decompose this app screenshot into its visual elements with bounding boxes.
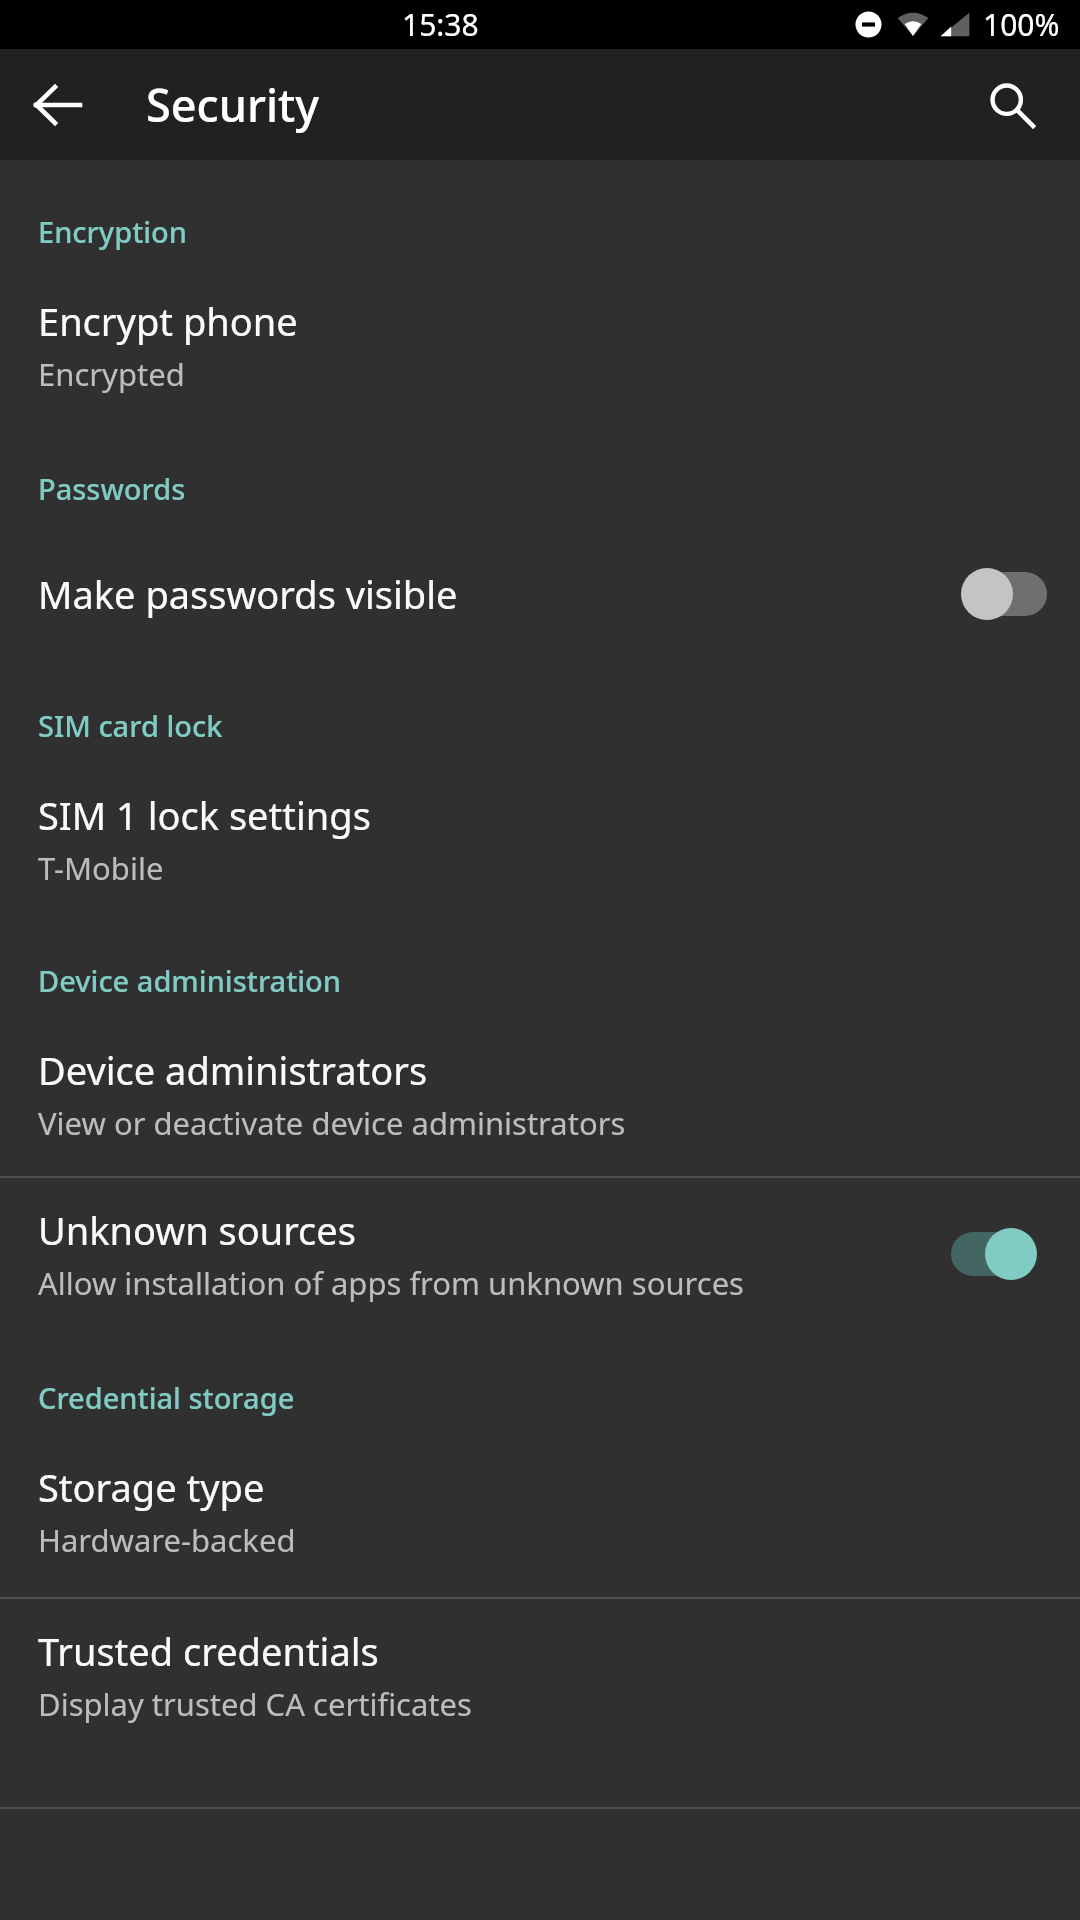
button[interactable]: Storage type xyxy=(0,1461,1080,1561)
button[interactable]: Trusted credentials xyxy=(0,1599,1080,1751)
button[interactable]: Switch on xyxy=(934,1206,1064,1302)
staticText: Passwords xyxy=(38,469,186,508)
button[interactable]: Device administrators xyxy=(0,1044,1080,1144)
staticText: Security xyxy=(146,74,320,135)
staticText: View or deactivate device administrators xyxy=(38,1102,626,1144)
staticText: Credential storage xyxy=(38,1378,295,1417)
staticText: Encrypted xyxy=(38,353,185,395)
button[interactable]: SIM 1 lock settings xyxy=(0,789,1080,889)
button[interactable]: Make passwords visible xyxy=(0,546,1080,642)
staticText: SIM 1 lock settings xyxy=(38,789,371,841)
staticText: Trusted credentials xyxy=(38,1625,379,1677)
staticText: Encryption xyxy=(38,212,187,251)
staticText: Display trusted CA certificates xyxy=(38,1683,472,1725)
staticText: Device administrators xyxy=(38,1044,428,1096)
staticText: Encrypt phone xyxy=(38,295,298,347)
staticText: Storage type xyxy=(38,1461,265,1513)
staticText: 100% xyxy=(983,4,1060,45)
staticText: Device administration xyxy=(38,961,341,1000)
button[interactable]: Switch off xyxy=(934,546,1064,642)
button[interactable]: Encrypt phone xyxy=(0,295,1080,395)
staticText: Make passwords visible xyxy=(38,568,458,620)
staticText: Allow installation of apps from unknown … xyxy=(38,1262,744,1304)
button[interactable]: Search xyxy=(970,63,1054,147)
staticText: Hardware-backed xyxy=(38,1519,296,1561)
staticText: T-Mobile xyxy=(38,847,164,889)
button[interactable]: Unknown sources xyxy=(0,1178,1080,1330)
staticText: SIM card lock xyxy=(38,706,223,745)
staticText: Unknown sources xyxy=(38,1204,356,1256)
staticText: 15:38 xyxy=(402,4,479,45)
button[interactable]: Navigate up xyxy=(16,63,100,147)
